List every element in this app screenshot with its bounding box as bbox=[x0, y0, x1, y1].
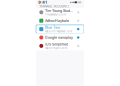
button[interactable]: Blue Two bbox=[36, 25, 84, 33]
staticText: Tim Young Student bbox=[45, 9, 74, 13]
staticText: supportline@mail.com bbox=[45, 30, 72, 33]
staticText: iOS Simplified bbox=[45, 42, 68, 46]
button[interactable]: iOS Simplified bbox=[36, 42, 84, 50]
staticText: tim@example.com bbox=[45, 13, 66, 16]
staticText: AdhocHaybale bbox=[45, 19, 69, 23]
staticText: Google nanoplay bbox=[45, 35, 73, 40]
button[interactable]: Google nanoplay bbox=[36, 33, 84, 42]
button[interactable]: Tim Young Student bbox=[36, 8, 84, 16]
staticText: 9:41 bbox=[38, 0, 47, 5]
staticText: Blue Two bbox=[45, 25, 60, 30]
button[interactable]: AdhocHaybale bbox=[36, 16, 84, 25]
staticText: MANAGE ACCOUNTS bbox=[39, 4, 69, 8]
staticText: support@ios.com bbox=[45, 47, 67, 50]
